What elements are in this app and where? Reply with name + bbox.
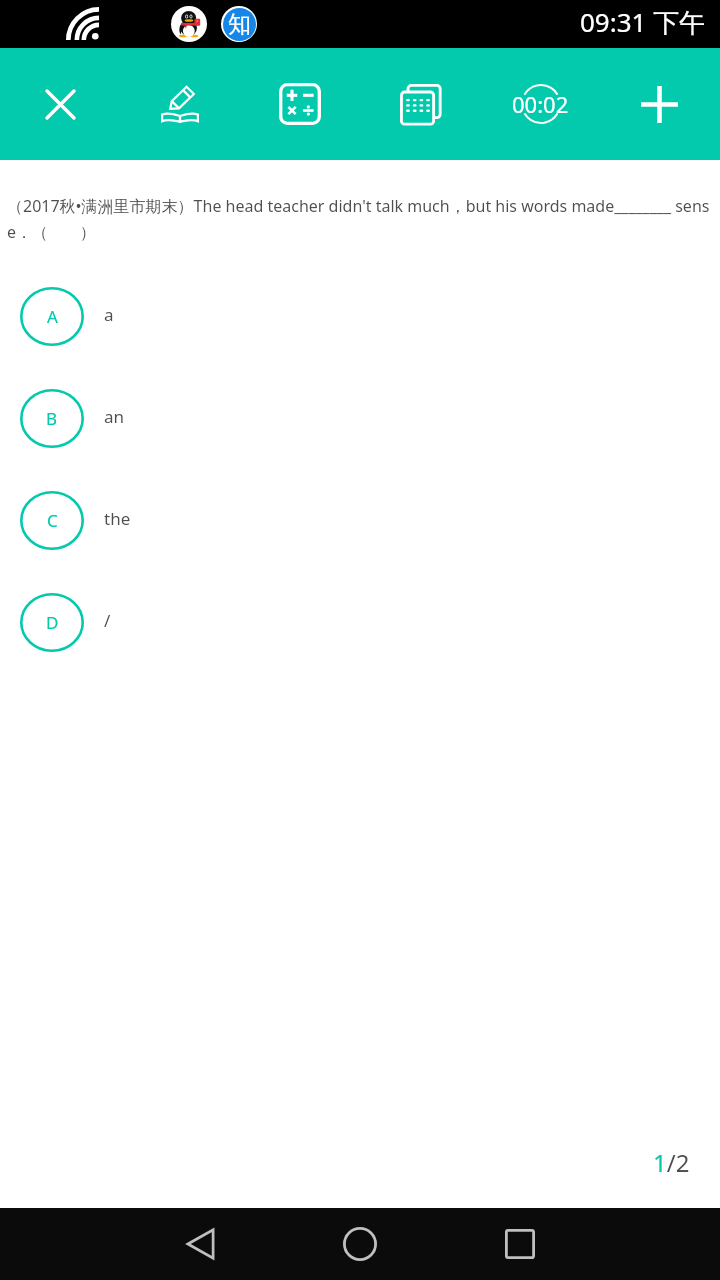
staticText: （2017秋•满洲里市期末）The head teacher didn't ta… xyxy=(7,195,718,242)
button[interactable]: Add xyxy=(623,68,695,140)
staticText: 1/2 xyxy=(653,1146,690,1179)
button[interactable]: Close xyxy=(24,68,96,140)
staticText: B xyxy=(46,407,58,430)
button[interactable]: Calculator xyxy=(264,68,336,140)
button[interactable]: Notes xyxy=(144,68,216,140)
staticText: 知 xyxy=(228,10,251,39)
button[interactable]: D xyxy=(0,571,720,673)
staticText: D xyxy=(46,611,59,634)
staticText: the xyxy=(104,507,131,530)
button[interactable]: B xyxy=(0,367,720,469)
button[interactable]: Home xyxy=(324,1208,396,1280)
staticText: an xyxy=(104,405,125,428)
staticText: / xyxy=(104,609,111,632)
button[interactable]: C xyxy=(0,469,720,571)
button[interactable]: Question card xyxy=(384,68,456,140)
staticText: 00:02 xyxy=(512,89,569,119)
button[interactable]: Recents xyxy=(484,1208,556,1280)
staticText: 09:31 下午 xyxy=(580,4,706,40)
button[interactable]: Timer xyxy=(495,59,585,149)
button[interactable]: A xyxy=(0,265,720,367)
staticText: A xyxy=(47,305,58,328)
staticText: C xyxy=(47,509,58,532)
button[interactable]: Back xyxy=(164,1208,236,1280)
staticText: a xyxy=(104,303,114,326)
